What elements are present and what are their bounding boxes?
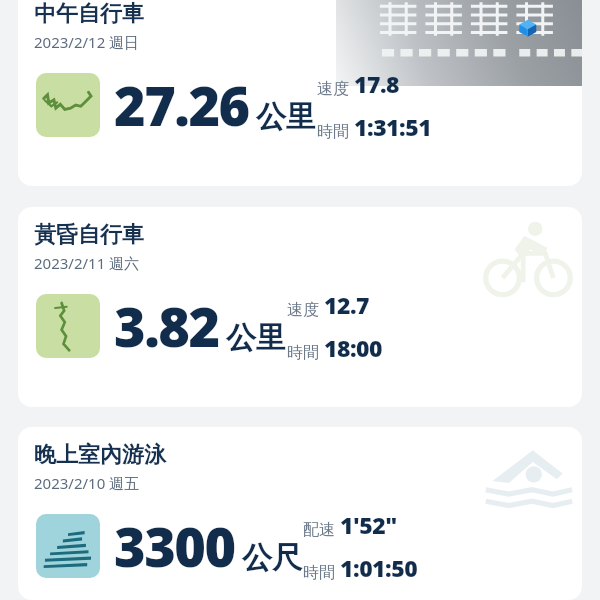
button[interactable]: 晚上室內游泳 [18, 427, 582, 600]
staticText: 速度 [287, 300, 319, 320]
staticText: 黃昏自行車 [34, 221, 144, 249]
staticText: 配速 [303, 520, 335, 540]
staticText: 18:00 [324, 332, 383, 363]
staticText: 公尺 [242, 539, 302, 577]
staticText: 1:01:50 [340, 552, 418, 583]
staticText: 3300 [114, 509, 235, 583]
staticText: 時間 [303, 563, 335, 583]
staticText: 中午自行車 [34, 0, 144, 28]
staticText: 公里 [256, 98, 316, 136]
staticText: 速度 [317, 79, 349, 99]
staticText: 2023/2/12 週日 [34, 32, 140, 52]
staticText: 時間 [287, 343, 319, 363]
button[interactable]: 中午自行車 [18, 0, 582, 186]
staticText: 晚上室內游泳 [34, 441, 166, 469]
button[interactable]: 黃昏自行車 [18, 207, 582, 407]
staticText: 17.8 [354, 68, 400, 99]
staticText: 公里 [226, 319, 286, 357]
staticText: 1'52" [340, 509, 397, 540]
staticText: 2023/2/10 週五 [34, 473, 140, 493]
staticText: 1:31:51 [354, 111, 432, 142]
staticText: 3.82 [114, 289, 219, 363]
staticText: 時間 [317, 122, 349, 142]
staticText: 12.7 [324, 289, 370, 320]
staticText: 2023/2/11 週六 [34, 253, 140, 273]
staticText: 27.26 [114, 68, 249, 142]
